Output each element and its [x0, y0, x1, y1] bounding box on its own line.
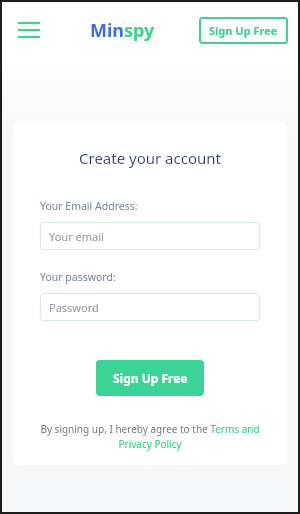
staticText: Password [49, 300, 99, 315]
button[interactable]: Sign Up Free [199, 17, 288, 44]
staticText: Minspy [90, 18, 155, 43]
staticText: Your password: [40, 270, 116, 284]
button[interactable]: Password [40, 293, 260, 321]
button[interactable]: Your email [40, 222, 260, 250]
staticText: Your email [49, 229, 104, 244]
button[interactable]: Sign Up Free [96, 360, 204, 396]
staticText: Create your account [79, 148, 221, 168]
staticText: Sign Up Free [113, 370, 188, 386]
button[interactable]: By signing up, I hereby agree to the Ter… [37, 422, 263, 451]
button[interactable]: Menu [12, 13, 46, 47]
staticText: Your Email Address: [40, 199, 138, 213]
staticText: By signing up, I hereby agree to the Ter… [37, 422, 263, 451]
button[interactable]: Minspy [90, 18, 155, 43]
staticText: Sign Up Free [209, 23, 278, 38]
